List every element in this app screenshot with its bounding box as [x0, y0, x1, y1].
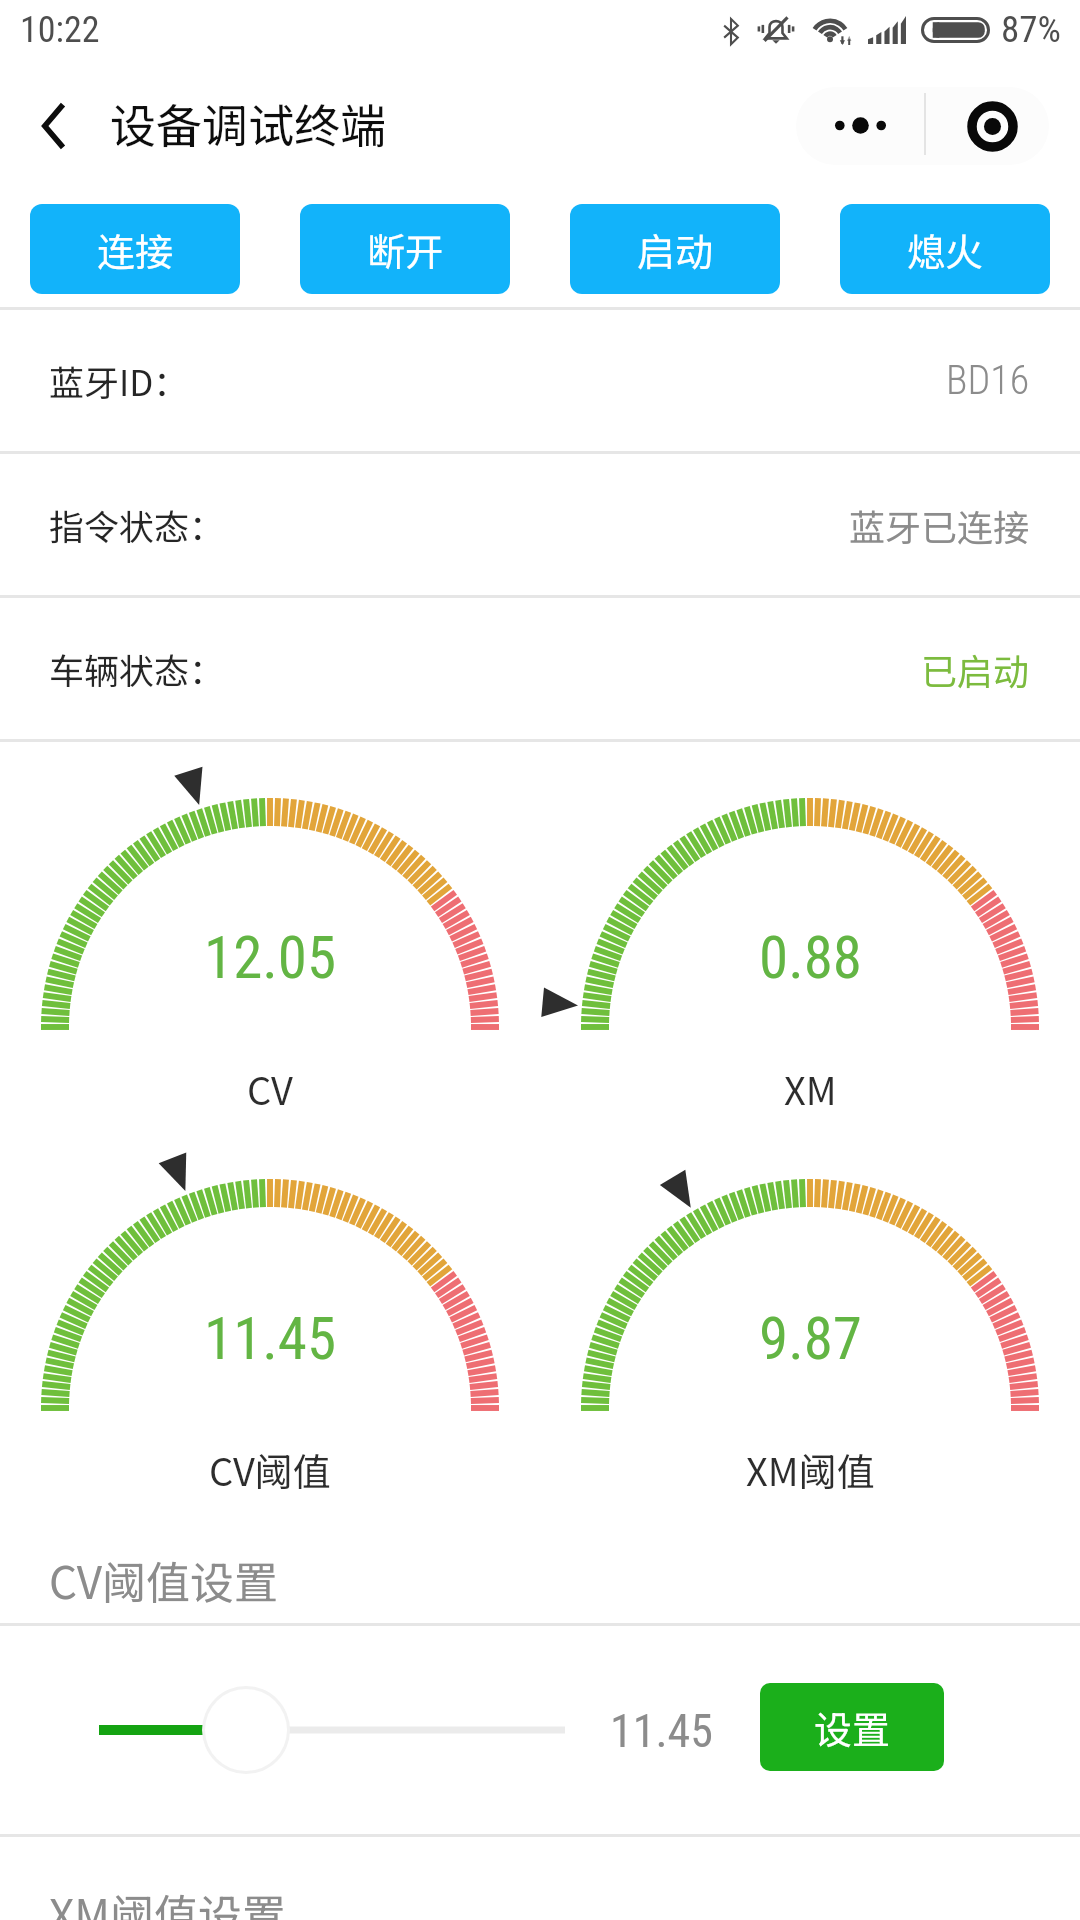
staticText: 熄火 — [907, 222, 984, 277]
staticText: CV阈值设置 — [49, 1548, 279, 1612]
staticText: XM阈值设置 — [49, 1881, 286, 1920]
button[interactable]: Threshold slider — [99, 1680, 565, 1780]
button[interactable]: 蓝牙ID： — [0, 310, 1080, 451]
staticText: 启动 — [637, 222, 714, 277]
button[interactable]: 设置 — [760, 1683, 944, 1771]
staticText: 12.05 — [204, 923, 337, 992]
staticText: XM — [784, 1061, 837, 1116]
staticText: XM阈值 — [746, 1442, 875, 1497]
staticText: 已启动 — [921, 643, 1030, 695]
staticText: 设备调试终端 — [110, 90, 386, 157]
button[interactable]: Close mini program — [925, 87, 1049, 165]
staticText: CV阈值 — [209, 1442, 331, 1497]
button[interactable]: 指令状态： — [0, 454, 1080, 595]
staticText: 指令状态： — [49, 499, 225, 550]
button[interactable]: 连接 — [30, 204, 240, 294]
button[interactable]: 熄火 — [840, 204, 1050, 294]
staticText: 车辆状态： — [49, 643, 225, 694]
staticText: 9.87 — [759, 1304, 862, 1373]
staticText: 11.45 — [610, 1704, 713, 1758]
staticText: 11.45 — [204, 1304, 337, 1373]
staticText: 10:22 — [20, 9, 100, 51]
staticText: 蓝牙ID： — [49, 355, 189, 406]
staticText: 连接 — [97, 222, 174, 277]
button[interactable]: 断开 — [300, 204, 510, 294]
staticText: BD16 — [946, 357, 1030, 404]
button[interactable]: 启动 — [570, 204, 780, 294]
staticText: 87% — [1001, 8, 1061, 51]
button[interactable]: 车辆状态： — [0, 598, 1080, 739]
button[interactable]: More options — [796, 87, 923, 165]
staticText: 蓝牙已连接 — [849, 499, 1030, 551]
staticText: CV — [247, 1061, 293, 1116]
staticText: 断开 — [367, 222, 444, 277]
button[interactable]: Back — [10, 83, 96, 169]
staticText: 设置 — [814, 1700, 891, 1755]
staticText: 0.88 — [759, 923, 862, 992]
